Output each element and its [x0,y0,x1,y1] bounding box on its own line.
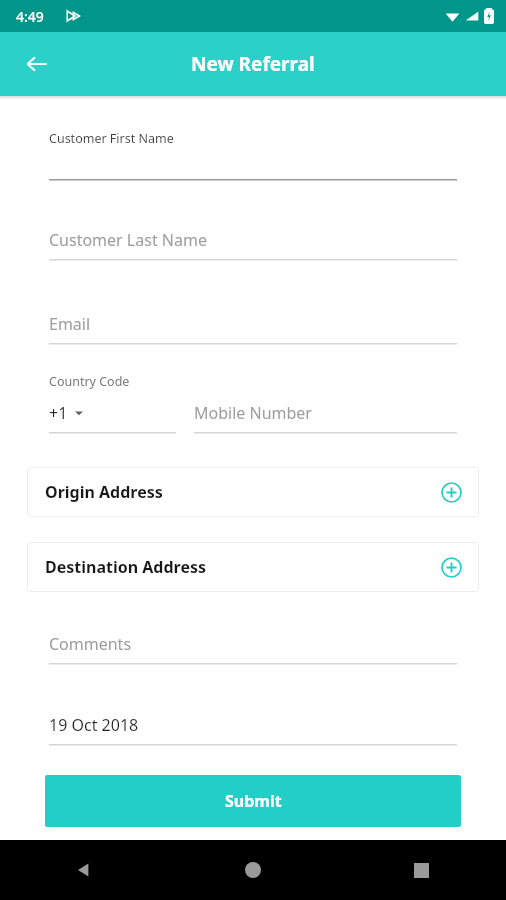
other: Add Origin Address [439,480,463,504]
button[interactable]: Recent apps [337,840,506,900]
button[interactable]: Comments [0,633,506,665]
staticText: Origin Address [45,481,163,503]
button[interactable]: Customer Last Name [0,229,506,261]
staticText: Comments [49,633,132,655]
button[interactable]: Mobile Number [194,402,457,434]
staticText: Customer First Name [49,130,174,147]
staticText: Email [49,313,91,335]
button[interactable]: 19 Oct 2018 [0,714,506,746]
button[interactable]: Email [0,313,506,345]
button[interactable]: Destination Address [27,542,479,592]
staticText: +1 [49,402,68,424]
staticText: Submit [225,790,282,812]
button[interactable]: Back [14,41,60,87]
button[interactable]: Submit [45,775,461,827]
other: Add Destination Address [439,555,463,579]
button[interactable]: Home [168,840,337,900]
staticText: 4:49 [16,7,44,26]
button[interactable]: Customer First Name [0,130,506,181]
staticText: Destination Address [45,556,207,578]
button[interactable]: +1 [49,402,176,434]
staticText: Country Code [49,373,130,390]
button[interactable]: Back [0,840,168,900]
staticText: New Referral [191,51,315,77]
button[interactable]: Origin Address [27,467,479,517]
staticText: 19 Oct 2018 [49,714,139,736]
staticText: Mobile Number [194,402,312,424]
staticText: Customer Last Name [49,229,207,251]
